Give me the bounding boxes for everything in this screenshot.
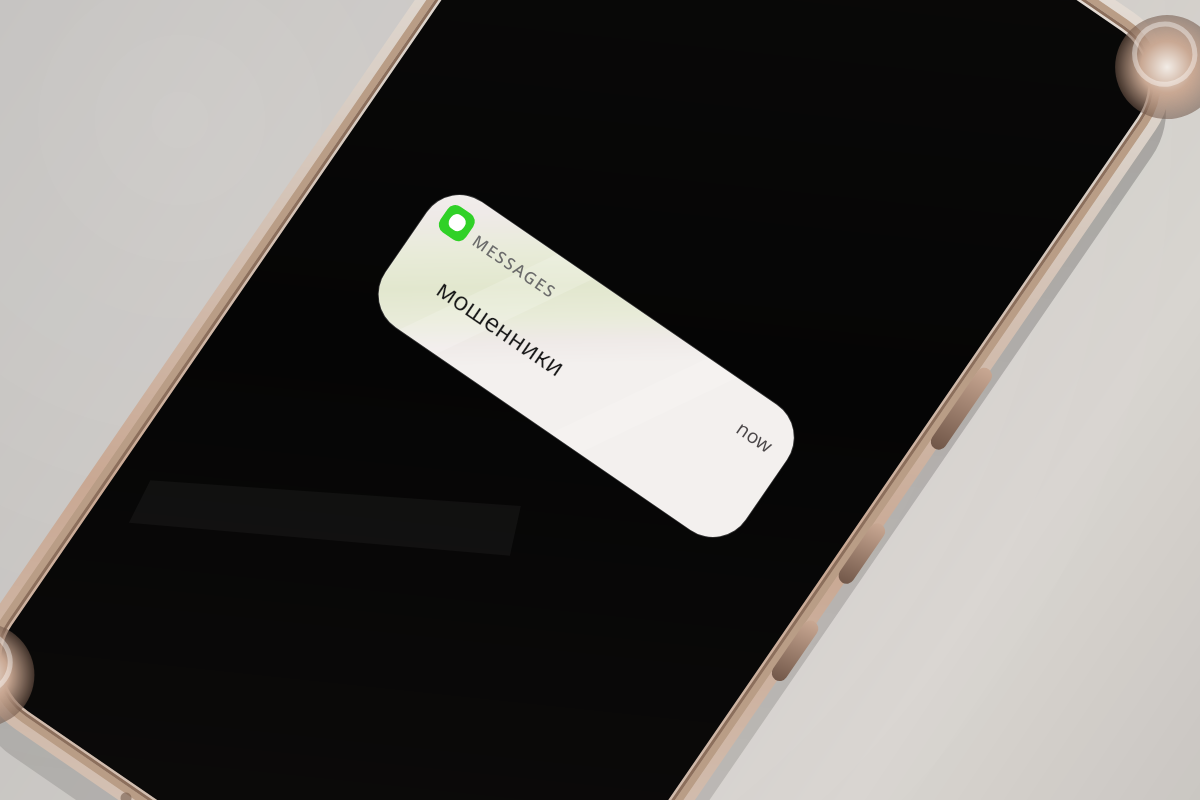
other: Phone showing a Messages notification [0,0,1200,800]
button[interactable] [0,0,1200,800]
